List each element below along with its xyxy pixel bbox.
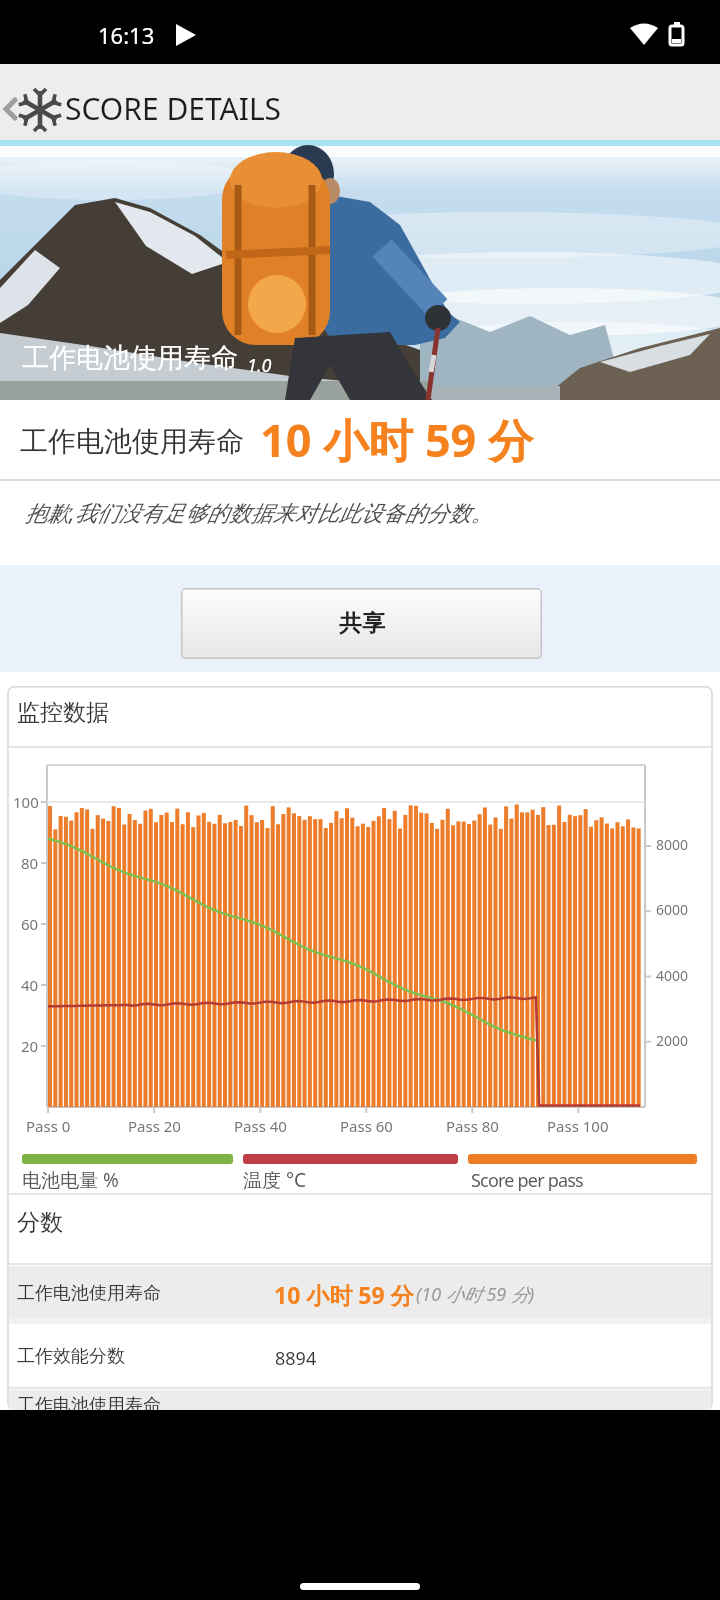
staticText: 2000 [656, 1031, 689, 1050]
button[interactable]: SCORE DETAILS [0, 64, 720, 140]
staticText: 20 [21, 1036, 39, 1056]
staticText: 60 [21, 914, 39, 934]
staticText: 工作电池使用寿命 [17, 1282, 161, 1305]
staticText: Pass 80 [446, 1116, 499, 1136]
staticText: 100 [13, 792, 39, 812]
staticText: 工作电池使用寿命 [17, 1394, 161, 1417]
staticText: Pass 40 [234, 1116, 287, 1136]
staticText: 80 [21, 853, 39, 873]
staticText: 抱歉,我们没有足够的数据来对比此设备的分数。 [25, 497, 493, 527]
staticText: 10 小时 59 分 [274, 1279, 414, 1310]
staticText: (10 小时 59 分) [416, 1282, 535, 1307]
staticText: 6000 [656, 900, 689, 919]
staticText: Pass 20 [128, 1116, 181, 1136]
staticText: 1.0 [247, 353, 272, 378]
staticText: 工作电池使用寿命 [22, 341, 238, 375]
staticText: 监控数据 [17, 698, 109, 727]
staticText: 8000 [656, 835, 689, 854]
button[interactable]: 工作效能分数 [9, 1324, 711, 1387]
staticText: 电池电量 % [22, 1167, 119, 1193]
staticText: Pass 0 [26, 1116, 71, 1136]
staticText: 工作效能分数 [17, 1345, 125, 1368]
button[interactable]: 工作电池使用寿命 [9, 1266, 711, 1319]
staticText: 共享 [339, 609, 385, 638]
button[interactable]: 共享 [181, 588, 542, 659]
staticText: 8894 [275, 1346, 317, 1371]
staticText: 4000 [656, 966, 689, 985]
staticText: Pass 100 [547, 1116, 609, 1136]
staticText: 分数 [17, 1208, 63, 1237]
staticText: 10 小时 59 分 [260, 409, 534, 470]
staticText: Score per pass [471, 1168, 583, 1193]
staticText: Pass 60 [340, 1116, 393, 1136]
staticText: 40 [21, 975, 39, 995]
staticText: 16:13 [98, 20, 155, 50]
staticText: 温度 °C [243, 1167, 307, 1193]
staticText: SCORE DETAILS [65, 88, 282, 129]
staticText: 工作电池使用寿命 [20, 424, 244, 459]
